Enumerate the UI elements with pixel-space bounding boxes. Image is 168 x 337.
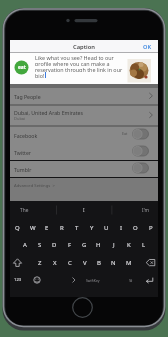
button[interactable]: E	[39, 220, 54, 236]
staticText: I'm	[142, 207, 150, 214]
staticText: profile where you can make a	[35, 60, 110, 66]
button[interactable]: OK	[138, 40, 156, 53]
button[interactable]: V	[77, 255, 92, 271]
staticText: U	[104, 224, 109, 232]
button[interactable]: I	[76, 206, 92, 215]
button[interactable]	[10, 144, 158, 160]
staticText: O	[133, 224, 138, 232]
staticText: L	[142, 241, 146, 249]
staticText: reservation through the link in our	[35, 66, 123, 72]
staticText: Z	[38, 259, 42, 267]
staticText: Y	[90, 224, 94, 232]
button[interactable]: B	[91, 255, 106, 271]
button[interactable]: A	[17, 237, 32, 253]
staticText: M	[126, 259, 132, 267]
button[interactable]	[10, 88, 158, 104]
button[interactable]: !#	[126, 276, 136, 284]
staticText: J	[113, 241, 115, 249]
button[interactable]: P	[143, 220, 158, 236]
staticText: I	[83, 207, 85, 214]
staticText: V	[83, 259, 87, 267]
button[interactable]	[10, 127, 158, 144]
staticText: I	[120, 224, 123, 232]
button[interactable]: L	[136, 237, 151, 253]
button[interactable]: W	[25, 220, 40, 236]
button[interactable]: F	[62, 237, 77, 253]
button[interactable]: G	[77, 237, 92, 253]
button[interactable]: H	[91, 237, 106, 253]
button[interactable]: 123	[10, 272, 25, 288]
button[interactable]	[10, 161, 158, 177]
staticText: !#	[129, 278, 133, 283]
staticText: B	[97, 259, 101, 267]
staticText: E	[45, 224, 49, 232]
staticText: bio!	[35, 72, 45, 78]
staticText: C	[68, 259, 72, 267]
button[interactable]: R	[54, 220, 69, 236]
staticText: X	[53, 259, 57, 267]
button[interactable]	[10, 106, 158, 125]
staticText: Q	[15, 224, 20, 232]
button[interactable]: N	[106, 255, 121, 271]
button[interactable]: Y	[84, 220, 99, 236]
button[interactable]: Z	[32, 255, 47, 271]
staticText: D	[52, 241, 57, 249]
staticText: W	[30, 224, 36, 232]
staticText: Tumblr	[14, 166, 32, 173]
staticText: Dubai, United Arab Emirates	[14, 109, 83, 116]
button[interactable]: C	[62, 255, 77, 271]
button[interactable]: I	[114, 220, 129, 236]
staticText: Facebook	[14, 132, 38, 139]
button[interactable]: D	[47, 237, 62, 253]
button[interactable]: T	[69, 220, 84, 236]
staticText: S	[38, 241, 42, 249]
staticText: 123	[14, 277, 22, 283]
staticText: Advanced Settings >	[14, 183, 55, 189]
staticText: G	[82, 241, 87, 249]
staticText: eat	[18, 64, 26, 71]
button[interactable]: M	[121, 255, 136, 271]
staticText: H	[96, 241, 101, 249]
staticText: SwiftKey	[86, 278, 100, 283]
button[interactable]: X	[47, 255, 62, 271]
staticText: OK	[143, 43, 152, 51]
button[interactable]: Advanced Settings >	[14, 181, 94, 190]
button[interactable]: SwiftKey	[78, 276, 108, 284]
staticText: T	[75, 224, 79, 232]
button[interactable]: J	[106, 237, 121, 253]
button[interactable]: Q	[10, 220, 25, 236]
button[interactable]: I'm	[136, 206, 156, 215]
staticText: Twitter	[14, 149, 32, 156]
staticText: F	[68, 241, 72, 249]
staticText: Tag People	[14, 93, 41, 100]
staticText: A	[23, 241, 27, 249]
button[interactable]: The	[14, 206, 34, 215]
staticText: The	[20, 207, 29, 214]
button[interactable]: S	[32, 237, 47, 253]
button[interactable]: K	[121, 237, 136, 253]
staticText: Caption	[73, 43, 95, 51]
staticText: K	[127, 241, 131, 249]
staticText: N	[111, 259, 116, 267]
staticText: R	[60, 224, 64, 232]
staticText: Eat	[122, 131, 128, 136]
staticText: Like what you see? Head to our	[35, 54, 114, 60]
staticText: P	[149, 224, 153, 232]
staticText: Dubai	[14, 116, 26, 121]
button[interactable]: O	[128, 220, 143, 236]
button[interactable]: U	[99, 220, 114, 236]
